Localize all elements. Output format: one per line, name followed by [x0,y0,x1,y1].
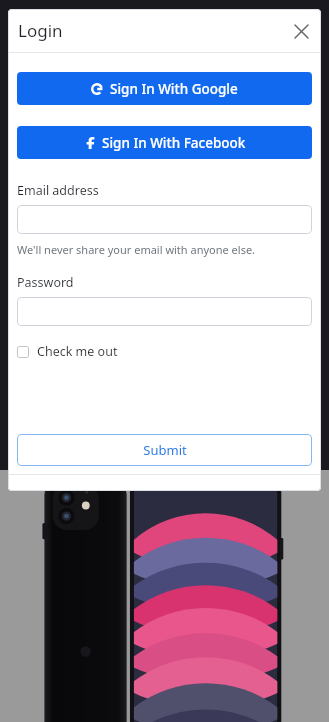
staticText: Login [18,19,63,42]
button[interactable]: Close [288,18,314,44]
button[interactable]: Check me out [17,343,118,360]
staticText: Email address [17,182,99,199]
staticText: Password [17,274,74,291]
staticText: Check me out [37,343,118,360]
staticText: Sign In With Google [110,80,238,98]
button[interactable]: Sign In With Google [17,72,312,105]
button[interactable] [17,205,312,234]
staticText: Sign In With Facebook [102,134,246,152]
button[interactable]: Submit [17,434,312,466]
button[interactable]: Sign In With Facebook [17,126,312,159]
button[interactable] [17,297,312,326]
staticText: Submit [143,441,187,459]
staticText: We'll never share your email with anyone… [17,242,256,257]
